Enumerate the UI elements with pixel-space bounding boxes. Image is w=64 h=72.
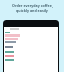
staticText: quickly and easily	[16, 8, 48, 13]
button[interactable]	[3, 20, 59, 72]
staticText: Order everyday coffee,	[12, 3, 53, 8]
